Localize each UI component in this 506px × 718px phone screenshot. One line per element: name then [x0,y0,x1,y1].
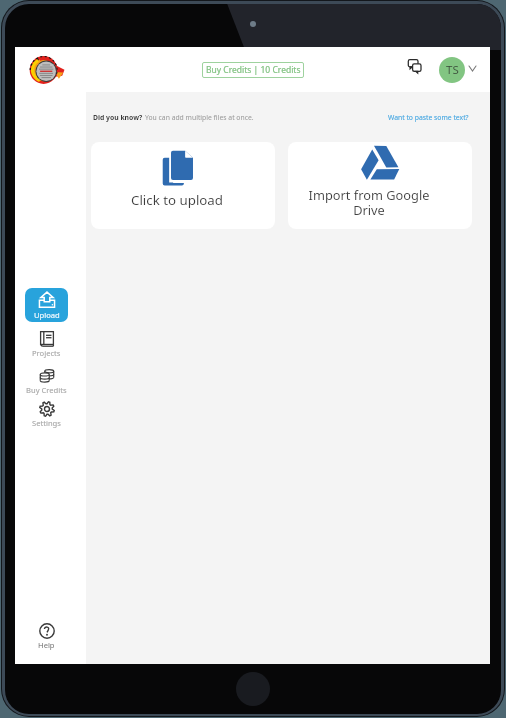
button[interactable]: TS [439,57,465,83]
button[interactable]: Want to paste some text? [388,113,469,122]
button[interactable]: Help [21,623,72,650]
button[interactable]: Account menu [465,61,479,75]
staticText: Upload [34,310,60,320]
button[interactable]: Messages [403,54,426,77]
staticText: Buy Credits [26,385,67,395]
button[interactable]: Click to upload [91,142,275,229]
button[interactable]: Upload [25,288,68,322]
button[interactable]: Import from Google Drive [288,142,472,229]
staticText: Projects [32,348,61,358]
staticText: Did you know? [93,113,143,122]
staticText: You can add multiple files at once. [145,113,254,122]
staticText: Help [38,640,55,650]
staticText: Want to paste some text? [388,113,469,122]
staticText: Import from Google Drive [307,186,431,219]
button[interactable]: Buy Credits [21,368,72,395]
button[interactable]: Buy Credits | 10 Credits [202,62,304,78]
button[interactable]: Settings [21,401,72,428]
staticText: Settings [32,418,61,428]
staticText: Click to upload [91,191,264,209]
button[interactable]: Home [27,54,61,88]
staticText: Buy Credits | 10 Credits [206,64,301,76]
button[interactable]: Projects [21,331,72,358]
staticText: TS [446,62,459,78]
